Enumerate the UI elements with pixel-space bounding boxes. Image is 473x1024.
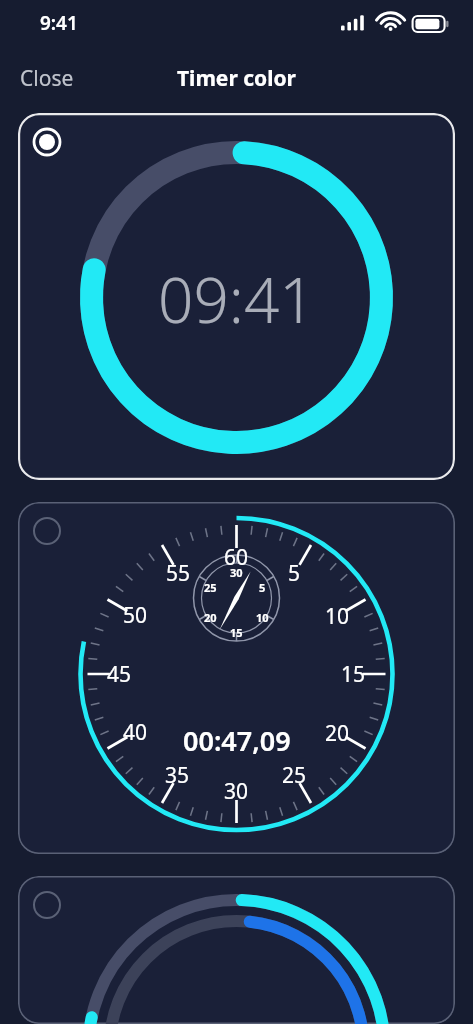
staticText: 9:41 (40, 10, 78, 36)
staticText: 40 (123, 718, 148, 747)
staticText: 35 (165, 761, 190, 790)
staticText: 45 (107, 660, 132, 689)
staticText: 09:41 (158, 257, 315, 341)
button[interactable]: Close (6, 56, 88, 101)
staticText: 00:47,09 (183, 722, 291, 759)
button[interactable]: 60 (18, 502, 455, 854)
staticText: 55 (166, 559, 191, 588)
button[interactable] (18, 876, 455, 1024)
staticText: 5 (259, 580, 266, 595)
staticText: 50 (123, 601, 148, 630)
button[interactable]: 09:41 (18, 113, 455, 480)
staticText: 5 (288, 559, 301, 588)
staticText: 20 (204, 610, 217, 625)
staticText: 10 (256, 610, 269, 625)
staticText: 60 (224, 543, 249, 572)
staticText: Close (20, 64, 74, 93)
staticText: 15 (230, 625, 243, 640)
staticText: 20 (325, 719, 350, 748)
staticText: 15 (341, 660, 366, 689)
staticText: 30 (224, 777, 249, 806)
staticText: 30 (230, 565, 243, 580)
staticText: Timer color (177, 64, 296, 93)
staticText: 10 (325, 602, 350, 631)
staticText: 25 (204, 580, 217, 595)
staticText: 25 (282, 761, 307, 790)
